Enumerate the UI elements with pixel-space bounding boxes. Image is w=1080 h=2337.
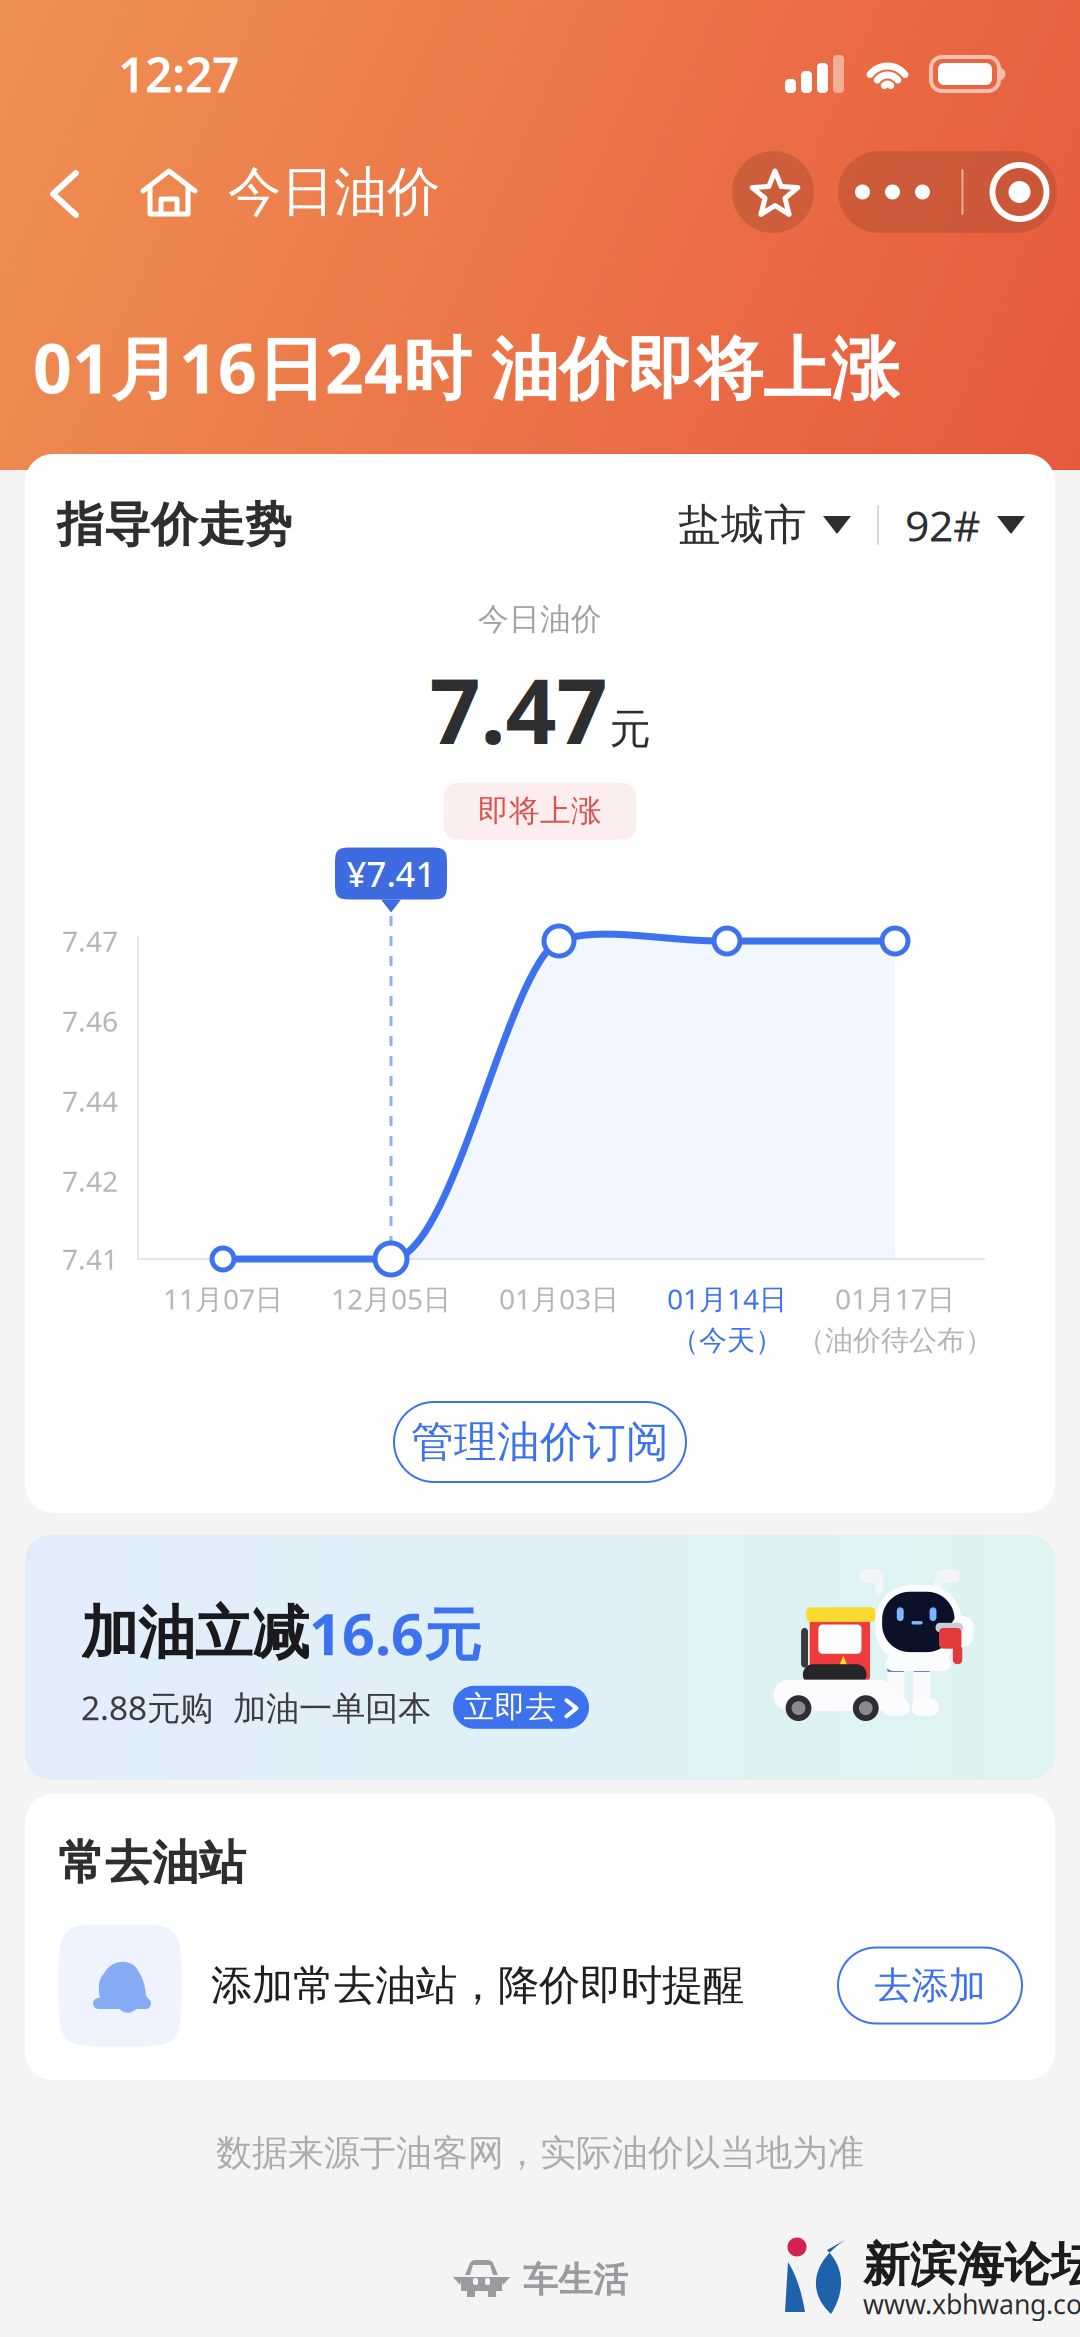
staticText: 即将上涨 xyxy=(478,792,602,830)
button[interactable]: 管理油价订阅 xyxy=(394,1402,686,1482)
staticText: 2.88元购 加油一单回本 xyxy=(81,1685,431,1729)
staticText: 数据来源于油客网，实际油价以当地为准 xyxy=(216,2131,864,2175)
staticText: 今日油价 xyxy=(228,159,440,225)
staticText: 12月05日 xyxy=(331,1280,451,1317)
staticText: 01月03日 xyxy=(499,1280,619,1317)
staticText: 管理油价订阅 xyxy=(411,1416,669,1468)
staticText: 今日油价 xyxy=(478,600,602,638)
staticText: 7.47 xyxy=(429,650,607,769)
staticText: 7.41 xyxy=(62,1240,118,1278)
staticText: （今天） xyxy=(671,1323,783,1358)
button[interactable]: 加油立减 xyxy=(25,1535,1055,1780)
staticText: 16.6元 xyxy=(309,1595,481,1671)
button[interactable]: 盐城市 xyxy=(678,499,851,551)
button[interactable]: More options xyxy=(838,151,1057,233)
staticText: www.xbhwang.com xyxy=(863,2286,1080,2322)
staticText: 元 xyxy=(609,704,650,755)
button[interactable]: Back xyxy=(0,151,114,233)
staticText: 01月16日24时 油价即将上涨 xyxy=(33,322,899,412)
staticText: 立即去 xyxy=(463,1688,556,1726)
button[interactable]: Home xyxy=(114,151,198,233)
staticText: 7.42 xyxy=(62,1162,118,1200)
staticText: 7.46 xyxy=(62,1002,118,1040)
staticText: 12:27 xyxy=(118,42,239,106)
staticText: 新滨海论坛 xyxy=(863,2236,1080,2294)
staticText: 指导价走势 xyxy=(57,496,292,554)
button[interactable]: 去添加 xyxy=(838,1947,1022,2023)
staticText: 加油立减 xyxy=(81,1598,309,1668)
staticText: 去添加 xyxy=(874,1963,985,2008)
staticText: 11月07日 xyxy=(163,1280,283,1317)
staticText: 01月17日 xyxy=(835,1280,955,1317)
staticText: 92# xyxy=(905,497,981,553)
staticText: 盐城市 xyxy=(678,499,807,551)
staticText: 添加常去油站，降价即时提醒 xyxy=(211,1960,744,2011)
button[interactable]: Favorite xyxy=(732,151,814,233)
staticText: 01月14日 xyxy=(667,1280,787,1317)
staticText: 车生活 xyxy=(523,2259,628,2301)
staticText: 7.47 xyxy=(62,922,118,960)
staticText: （油价待公布） xyxy=(797,1323,993,1358)
button[interactable]: 92# xyxy=(905,497,1055,553)
staticText: 常去油站 xyxy=(58,1834,246,1892)
staticText: ¥7.41 xyxy=(346,850,435,896)
staticText: 7.44 xyxy=(62,1082,118,1120)
